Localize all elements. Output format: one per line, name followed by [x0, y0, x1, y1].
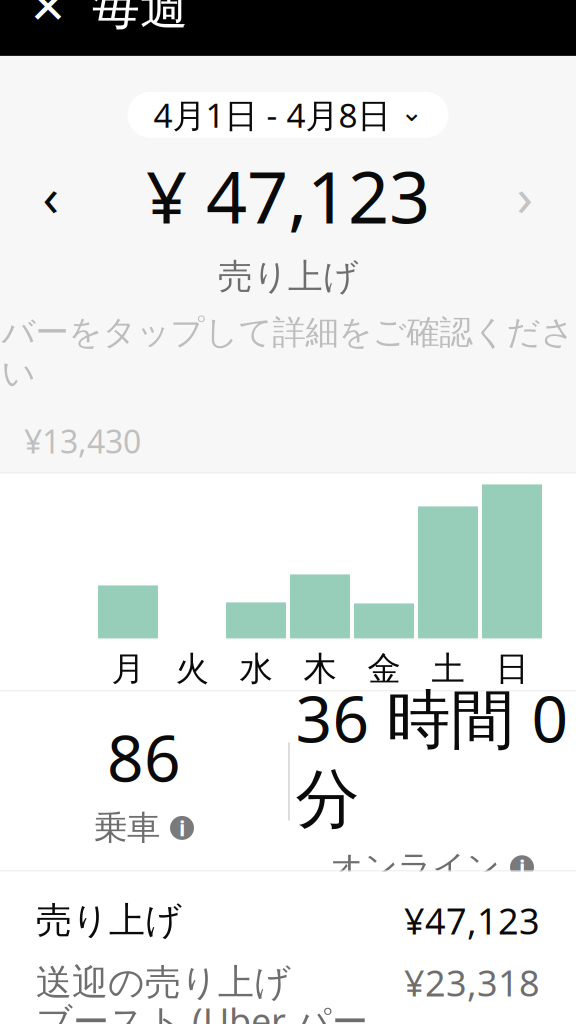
button[interactable]: 4月1日 - 4月8日	[127, 92, 448, 138]
staticText: バーをタップして詳細をご確認ください	[1, 312, 574, 394]
staticText: ¥23,318	[404, 958, 540, 1006]
staticText: i	[519, 853, 525, 881]
button[interactable]: 36 時間 0 分	[288, 701, 576, 861]
staticText: 乗車	[94, 807, 160, 848]
button[interactable]: 木	[290, 481, 350, 638]
button[interactable]: 土	[418, 481, 478, 638]
staticText: 日	[495, 648, 528, 689]
staticText: 毎週	[92, 0, 188, 37]
staticText: 86	[107, 714, 181, 799]
staticText: 月	[111, 648, 144, 689]
staticText: ブースト (Uber パートナー プロモーシ…	[36, 997, 369, 1024]
staticText: 売り上げ	[218, 255, 358, 298]
button[interactable]: 水	[226, 481, 286, 638]
button[interactable]: 次の週	[496, 167, 554, 225]
staticText: オンライン	[330, 847, 500, 888]
staticText: ¥47,123	[404, 896, 540, 944]
staticText: 4月1日 - 4月8日	[153, 93, 390, 137]
button[interactable]: 前の週	[22, 167, 80, 225]
button[interactable]: 閉じる	[18, 0, 78, 37]
staticText: 売り上げ	[36, 898, 182, 942]
staticText: 水	[239, 648, 272, 689]
staticText: ¥13,430	[24, 420, 141, 462]
staticText: ⌄	[400, 97, 422, 127]
staticText: 土	[431, 648, 464, 689]
staticText: i	[179, 814, 185, 842]
button[interactable]: 86	[0, 701, 288, 861]
staticText: ¥ 47,123	[146, 148, 430, 243]
button[interactable]: 金	[354, 481, 414, 638]
staticText: ✕	[29, 0, 67, 33]
staticText: ›	[516, 160, 533, 231]
button[interactable]: 日	[482, 481, 542, 638]
staticText: ‹	[42, 160, 59, 231]
staticText: 36 時間 0 分	[295, 675, 568, 839]
button[interactable]: 月	[98, 481, 158, 638]
staticText: 送迎の売り上げ	[36, 960, 291, 1004]
staticText: 金	[367, 648, 400, 689]
staticText: 火	[175, 648, 208, 689]
staticText: 木	[303, 648, 336, 689]
